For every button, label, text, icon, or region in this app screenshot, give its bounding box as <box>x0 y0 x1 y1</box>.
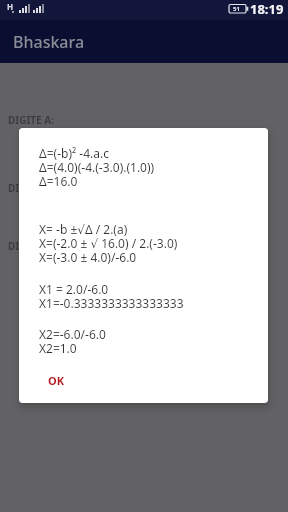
button[interactable]: OK <box>41 367 72 394</box>
staticText: OK <box>48 373 65 388</box>
staticText: X1=-0.3333333333333333 <box>39 295 184 311</box>
staticText: X2=1.0 <box>39 340 77 356</box>
staticText: X=(-2.0 ± √ 16.0) / 2.(-3.0) <box>39 235 178 251</box>
staticText: 51 <box>233 5 240 13</box>
staticText: X2=-6.0/-6.0 <box>39 326 106 342</box>
staticText: DIGITE B: <box>8 181 54 195</box>
staticText: Δ=16.0 <box>39 173 78 189</box>
staticText: X=(-3.0 ± 4.0)/-6.0 <box>39 249 137 265</box>
staticText: Δ=(-b)² -4.a.c <box>39 145 109 161</box>
staticText: X= -b ±√Δ / 2.(a) <box>39 221 128 237</box>
staticText: X1 = 2.0/-6.0 <box>39 281 109 297</box>
staticText: Δ=(4.0)(-4.(-3.0).(1.0)) <box>39 159 155 175</box>
staticText: DIGITE C: <box>8 239 54 253</box>
staticText: H <box>7 1 14 12</box>
staticText: DIGITE A: <box>8 113 55 127</box>
staticText: Bhaskara <box>13 31 85 53</box>
staticText: 18:19 <box>250 0 284 18</box>
